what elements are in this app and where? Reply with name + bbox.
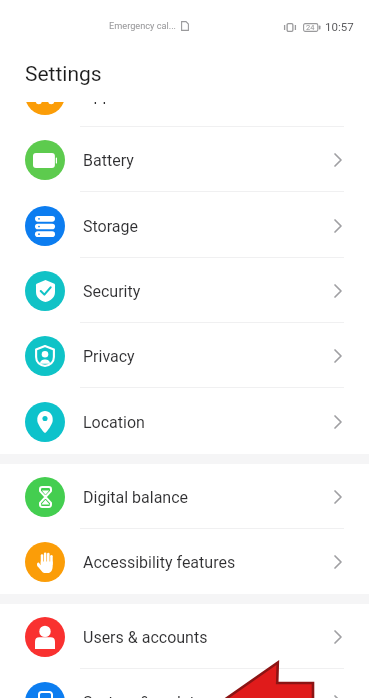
button[interactable]: Apps — [0, 102, 369, 127]
staticText: Storage — [83, 217, 138, 236]
staticText: Emergency cal... — [109, 20, 177, 31]
button[interactable]: Storage — [0, 193, 369, 258]
button[interactable]: Location — [0, 389, 369, 454]
staticText: Accessibility features — [83, 553, 236, 572]
staticText: 24 — [306, 23, 315, 32]
button[interactable]: Accessibility features — [0, 529, 369, 594]
staticText: Apps — [83, 102, 120, 105]
staticText: Users & accounts — [83, 628, 208, 647]
staticText: Security — [83, 282, 141, 301]
button[interactable]: System & updates — [0, 669, 369, 698]
staticText: Location — [83, 413, 145, 432]
button[interactable]: Privacy — [0, 323, 369, 388]
staticText: System & updates — [83, 693, 212, 698]
staticText: Privacy — [83, 347, 135, 366]
staticText: Digital balance — [83, 488, 189, 507]
button[interactable]: Battery — [0, 127, 369, 192]
staticText: 10:57 — [325, 20, 354, 33]
staticText: Battery — [83, 151, 134, 170]
button[interactable]: Security — [0, 258, 369, 323]
staticText: Settings — [25, 62, 102, 87]
button[interactable]: Digital balance — [0, 464, 369, 529]
button[interactable]: Users & accounts — [0, 604, 369, 669]
